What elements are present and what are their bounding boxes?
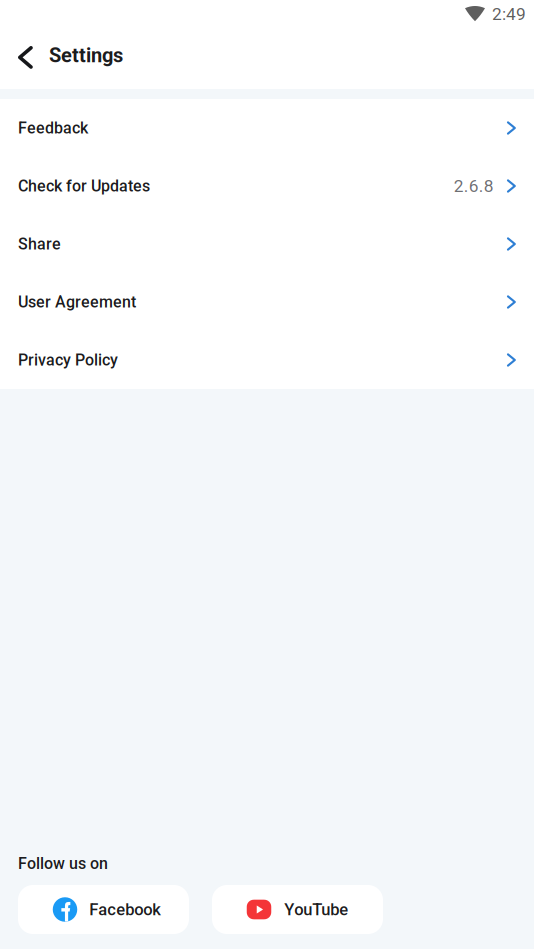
- button[interactable]: Privacy Policy: [0, 331, 534, 389]
- button[interactable]: Share: [0, 215, 534, 273]
- staticText: User Agreement: [18, 293, 136, 311]
- button[interactable]: YouTube: [212, 885, 383, 934]
- button[interactable]: Check for Updates: [0, 157, 534, 215]
- staticText: Settings: [49, 44, 123, 67]
- staticText: 2:49: [492, 4, 526, 24]
- staticText: YouTube: [284, 900, 348, 919]
- staticText: Share: [18, 235, 61, 253]
- staticText: Check for Updates: [18, 177, 150, 195]
- staticText: 2.6.8: [454, 176, 494, 196]
- staticText: Privacy Policy: [18, 351, 118, 369]
- staticText: Facebook: [89, 900, 161, 919]
- button[interactable]: Facebook: [18, 885, 189, 934]
- staticText: Follow us on: [18, 854, 108, 873]
- staticText: Feedback: [18, 119, 88, 137]
- button[interactable]: Back: [0, 42, 49, 69]
- button[interactable]: User Agreement: [0, 273, 534, 331]
- button[interactable]: Feedback: [0, 99, 534, 157]
